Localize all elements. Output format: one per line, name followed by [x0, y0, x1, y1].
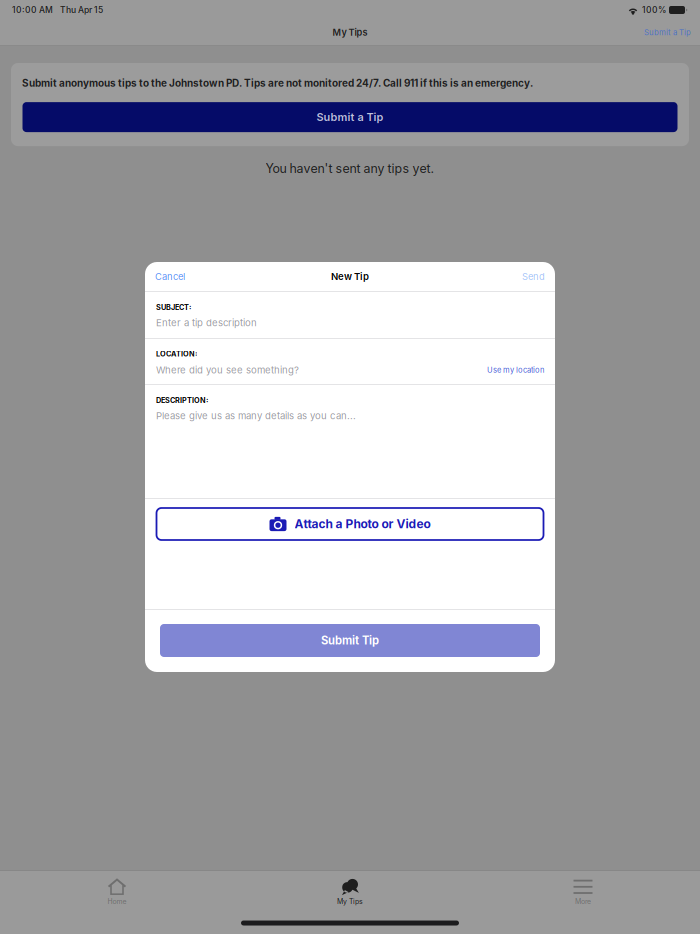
staticText: Attach a Photo or Video: [294, 517, 430, 531]
staticText: LOCATION:: [156, 349, 197, 358]
staticText: Submit a Tip: [316, 110, 383, 124]
staticText: Please give us as many details as you ca…: [156, 410, 356, 421]
staticText: SUBJECT:: [156, 303, 191, 312]
staticText: DESCRIPTION:: [156, 396, 208, 405]
button[interactable]: More: [466, 871, 699, 912]
staticText: Cancel: [155, 271, 185, 282]
staticText: You haven't sent any tips yet.: [265, 161, 434, 176]
staticText: 100%: [642, 5, 666, 15]
staticText: Send: [522, 271, 545, 282]
staticText: Use my location: [487, 365, 544, 374]
button[interactable]: Attach a Photo or Video: [156, 508, 543, 540]
staticText: Where did you see something?: [156, 364, 299, 376]
button[interactable]: Cancel: [145, 263, 195, 290]
staticText: My Tips: [332, 27, 367, 38]
button[interactable]: Home: [0, 871, 233, 912]
staticText: More: [575, 897, 591, 906]
staticText: Submit anonymous tips to the Johnstown P…: [22, 77, 533, 89]
staticText: Enter a tip description: [156, 317, 257, 328]
button[interactable]: Use my location: [487, 363, 544, 376]
button[interactable]: Submit a Tip: [635, 21, 700, 44]
button[interactable]: Send: [512, 263, 555, 290]
button[interactable]: Submit Tip: [160, 624, 540, 657]
staticText: New Tip: [331, 271, 369, 282]
staticText: Home: [107, 897, 126, 906]
staticText: Submit Tip: [321, 634, 379, 647]
staticText: My Tips: [337, 897, 363, 906]
button[interactable]: My Tips: [233, 871, 466, 912]
staticText: 10:00 AM: [12, 5, 53, 15]
staticText: Thu Apr 15: [60, 5, 103, 15]
button[interactable]: Submit a Tip: [22, 102, 677, 132]
staticText: Submit a Tip: [644, 28, 691, 37]
